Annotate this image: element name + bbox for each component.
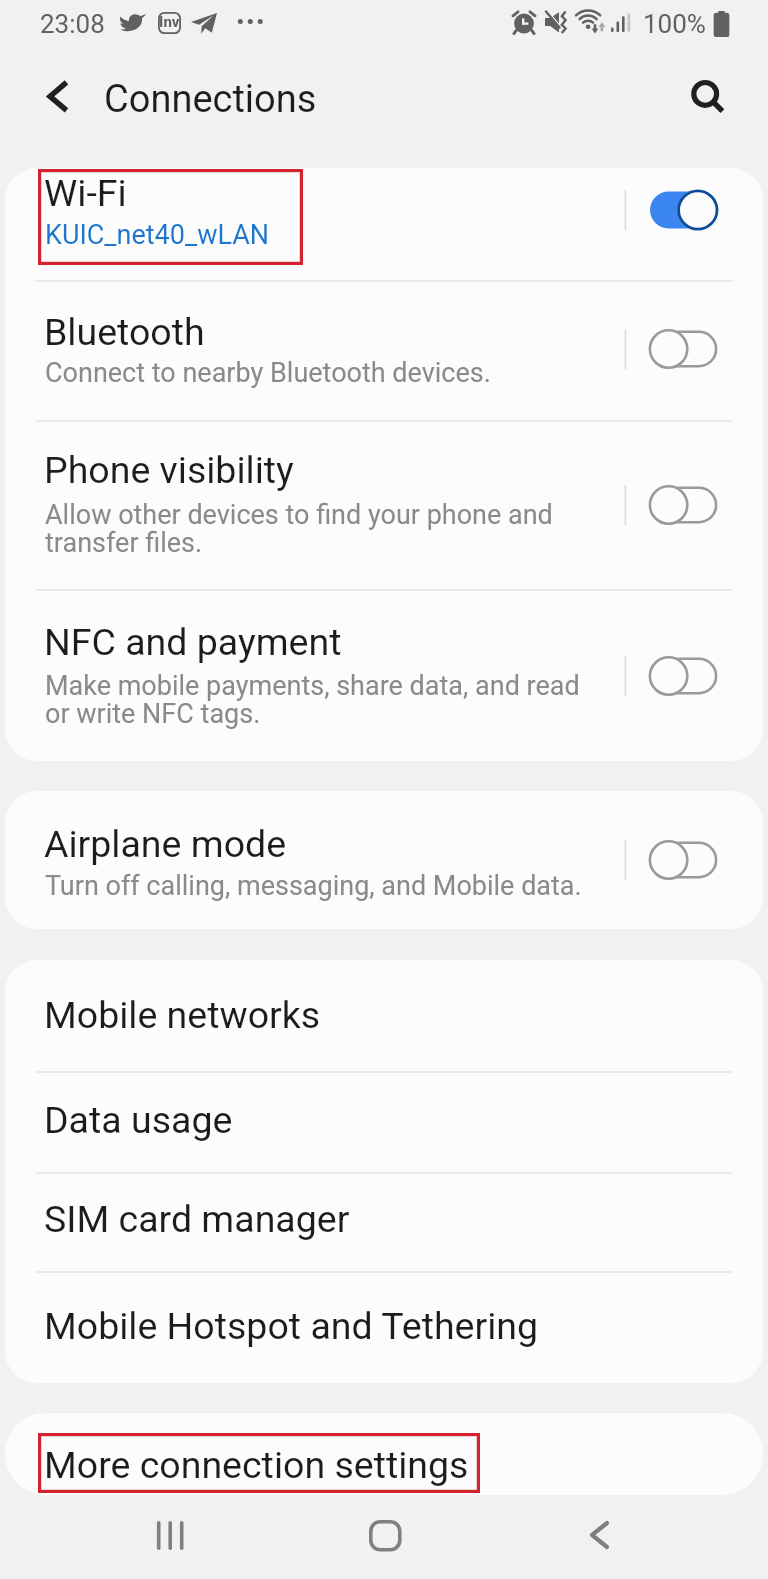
staticText: KUIC_net40_wLAN (45, 219, 590, 251)
staticText: NFC and payment (44, 620, 342, 664)
staticText: Phone visibility (44, 448, 294, 492)
staticText: Connect to nearby Bluetooth devices. (45, 357, 590, 389)
button[interactable]: Bluetooth switch (615, 311, 741, 387)
button[interactable]: Search (672, 66, 728, 122)
button[interactable]: Phone visibility switch (615, 467, 741, 543)
staticText: Wi-Fi (44, 171, 127, 215)
button[interactable]: NFC and payment switch (615, 638, 741, 714)
button[interactable]: Data usage (5, 1072, 763, 1172)
button[interactable]: Airplane mode (5, 791, 763, 929)
staticText: SIM card manager (44, 1197, 350, 1241)
button[interactable]: Wi-Fi (5, 168, 763, 280)
staticText: Allow other devices to find your phone a… (45, 499, 590, 559)
button[interactable]: Airplane mode switch (615, 822, 741, 898)
button[interactable]: SIM card manager (5, 1173, 763, 1271)
button[interactable]: Navigate up (30, 72, 86, 128)
staticText: Mobile Hotspot and Tethering (44, 1304, 539, 1348)
staticText: Connections (104, 77, 317, 122)
staticText: Inv (159, 13, 180, 31)
button[interactable]: Bluetooth (5, 281, 763, 420)
button[interactable]: Mobile Hotspot and Tethering (5, 1272, 763, 1383)
staticText: Mobile networks (44, 993, 321, 1037)
button[interactable]: Mobile networks (5, 960, 763, 1071)
button[interactable]: More connection settings (5, 1413, 763, 1495)
button[interactable]: Wi-Fi switch (615, 172, 741, 248)
button[interactable]: Recent apps (128, 1497, 208, 1577)
staticText: Airplane mode (44, 822, 287, 866)
button[interactable]: NFC and payment (5, 590, 763, 760)
staticText: Bluetooth (44, 310, 205, 354)
staticText: 100% (643, 9, 706, 39)
staticText: More connection settings (44, 1443, 469, 1487)
staticText: Make mobile payments, share data, and re… (45, 670, 590, 730)
button[interactable]: Phone visibility (5, 421, 763, 589)
staticText: Turn off calling, messaging, and Mobile … (45, 870, 625, 902)
button[interactable]: Home (344, 1497, 424, 1577)
staticText: 23:08 (40, 9, 105, 39)
staticText: Data usage (44, 1098, 233, 1142)
button[interactable]: Back (560, 1497, 640, 1577)
